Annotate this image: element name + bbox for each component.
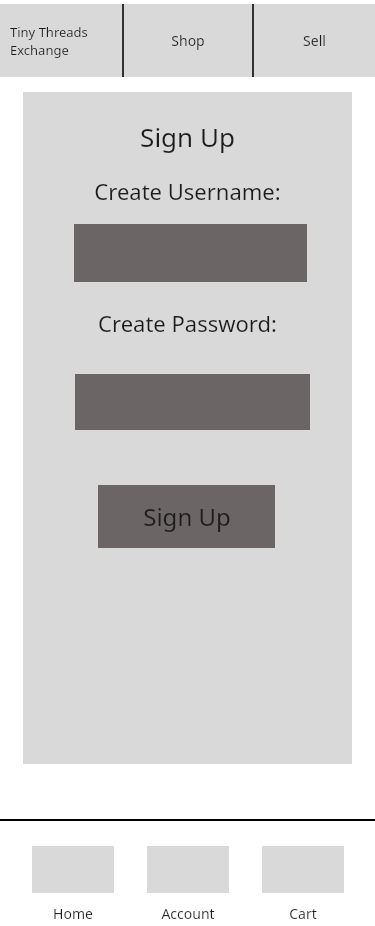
button[interactable]: Cart <box>245 840 360 926</box>
button[interactable]: Sign Up <box>98 485 275 548</box>
button[interactable]: Shop <box>124 4 252 77</box>
staticText: Sell <box>303 31 326 50</box>
button[interactable]: Account <box>130 840 245 926</box>
staticText: Create Password: <box>98 308 277 338</box>
button[interactable]: Tiny Threads Exchange <box>0 4 122 77</box>
staticText: Cart <box>289 904 317 923</box>
staticText: Sign Up <box>143 500 231 533</box>
staticText: Account <box>161 904 215 923</box>
staticText: Tiny Threads Exchange <box>10 23 88 59</box>
button[interactable]: Sell <box>254 4 375 77</box>
staticText: Create Username: <box>94 176 281 206</box>
staticText: Home <box>53 904 93 923</box>
staticText: Shop <box>171 31 205 50</box>
button[interactable]: Home <box>15 840 130 926</box>
staticText: Sign Up <box>140 119 235 154</box>
